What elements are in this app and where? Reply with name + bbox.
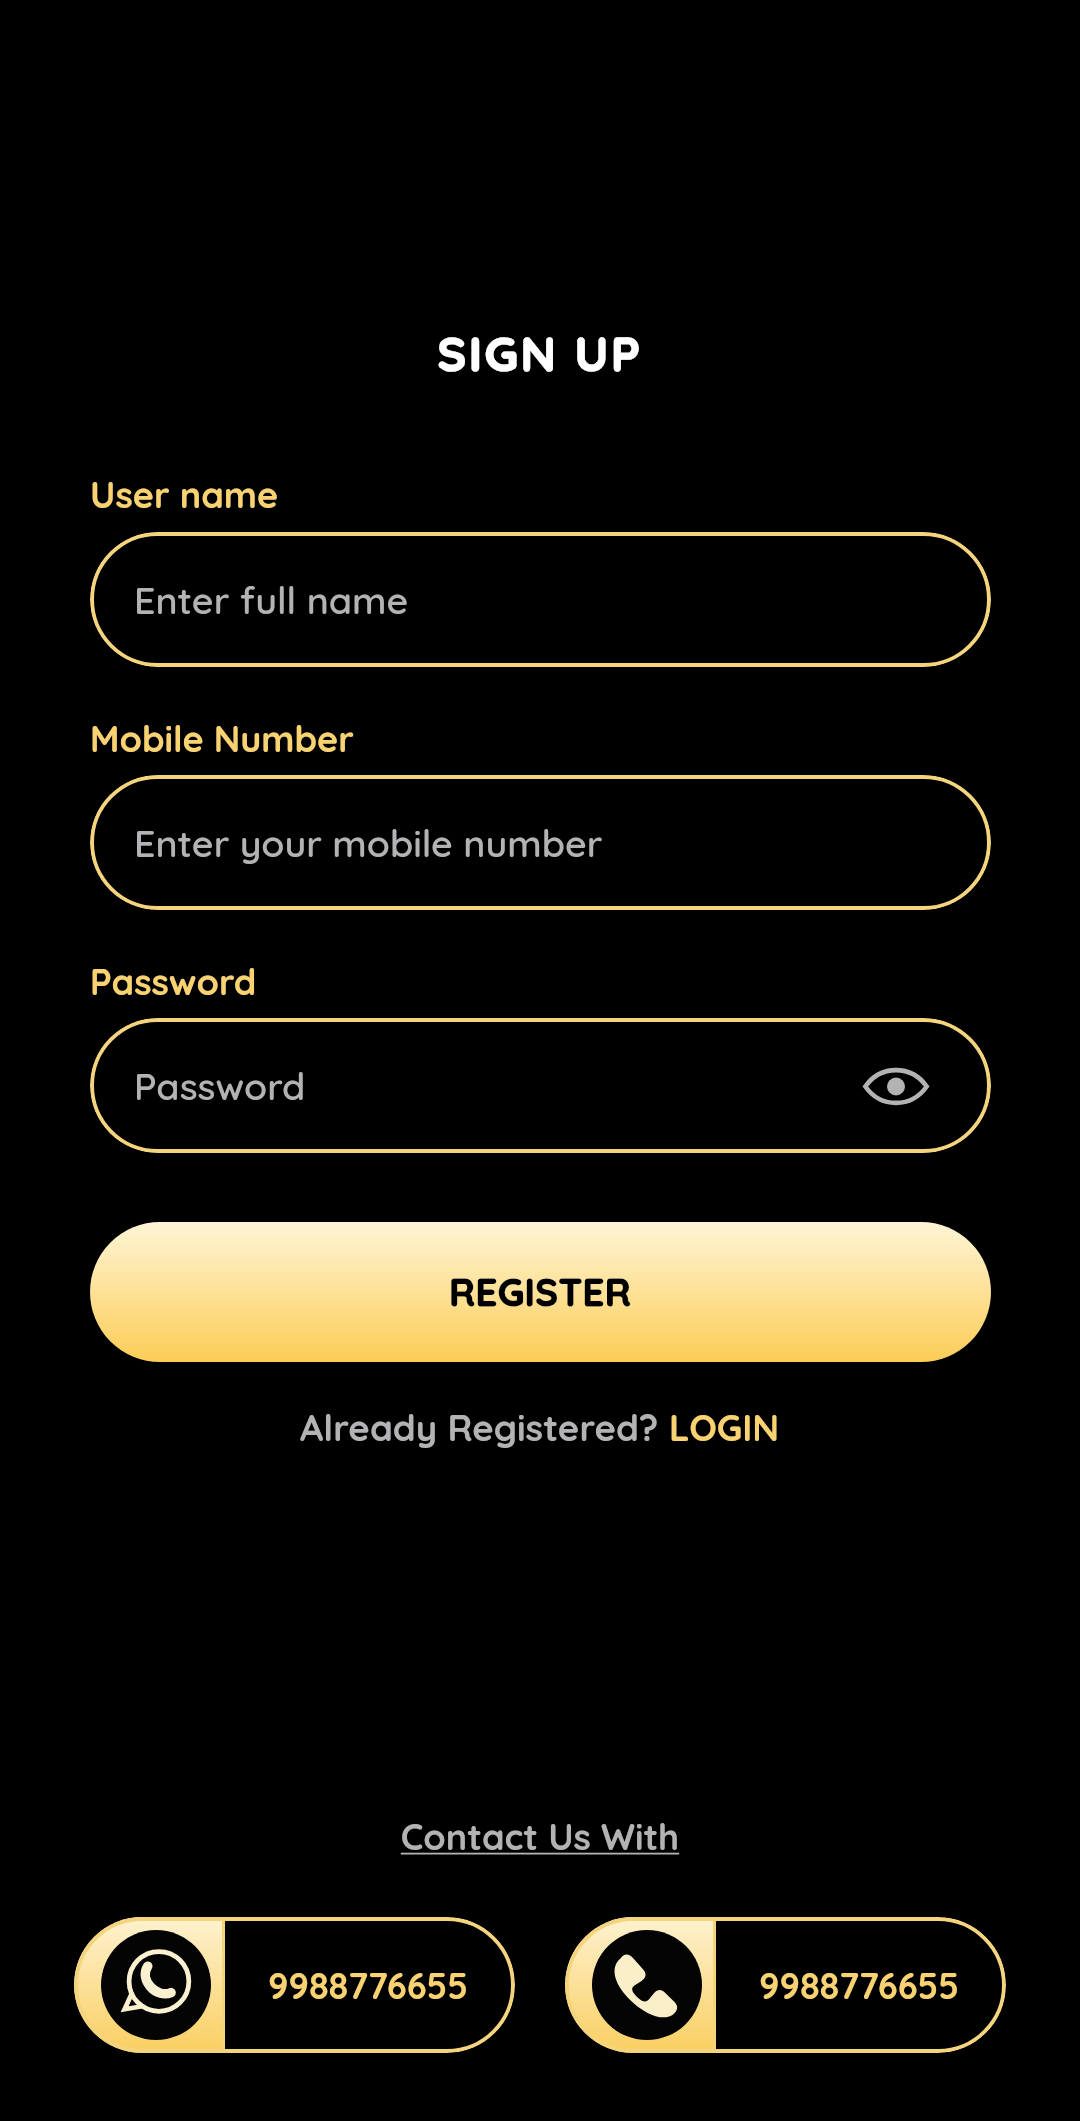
staticText: Enter your mobile number	[134, 819, 603, 866]
staticText: SIGN UP	[0, 323, 1080, 383]
button[interactable]: Enter your mobile number	[90, 775, 991, 910]
staticText: Mobile Number	[90, 716, 354, 761]
staticText: Password	[90, 959, 257, 1004]
button[interactable]: LOGIN	[669, 1404, 780, 1450]
staticText: LOGIN	[669, 1404, 780, 1450]
staticText: Password	[134, 1062, 306, 1109]
button[interactable]: REGISTER	[90, 1222, 991, 1362]
button[interactable]: Password	[90, 1018, 991, 1153]
staticText: 9988776655	[759, 1963, 960, 2008]
staticText: Enter full name	[134, 576, 409, 623]
staticText: User name	[90, 472, 279, 517]
button[interactable]: Show password	[848, 1038, 944, 1134]
button[interactable]: Enter full name	[90, 532, 991, 667]
staticText: REGISTER	[449, 1268, 632, 1316]
staticText: Contact Us With	[0, 1814, 1080, 1859]
button[interactable]: 9988776655	[74, 1917, 515, 2053]
button[interactable]: 9988776655	[565, 1917, 1006, 2053]
staticText: Already Registered?	[300, 1404, 669, 1450]
staticText: 9988776655	[268, 1963, 469, 2008]
